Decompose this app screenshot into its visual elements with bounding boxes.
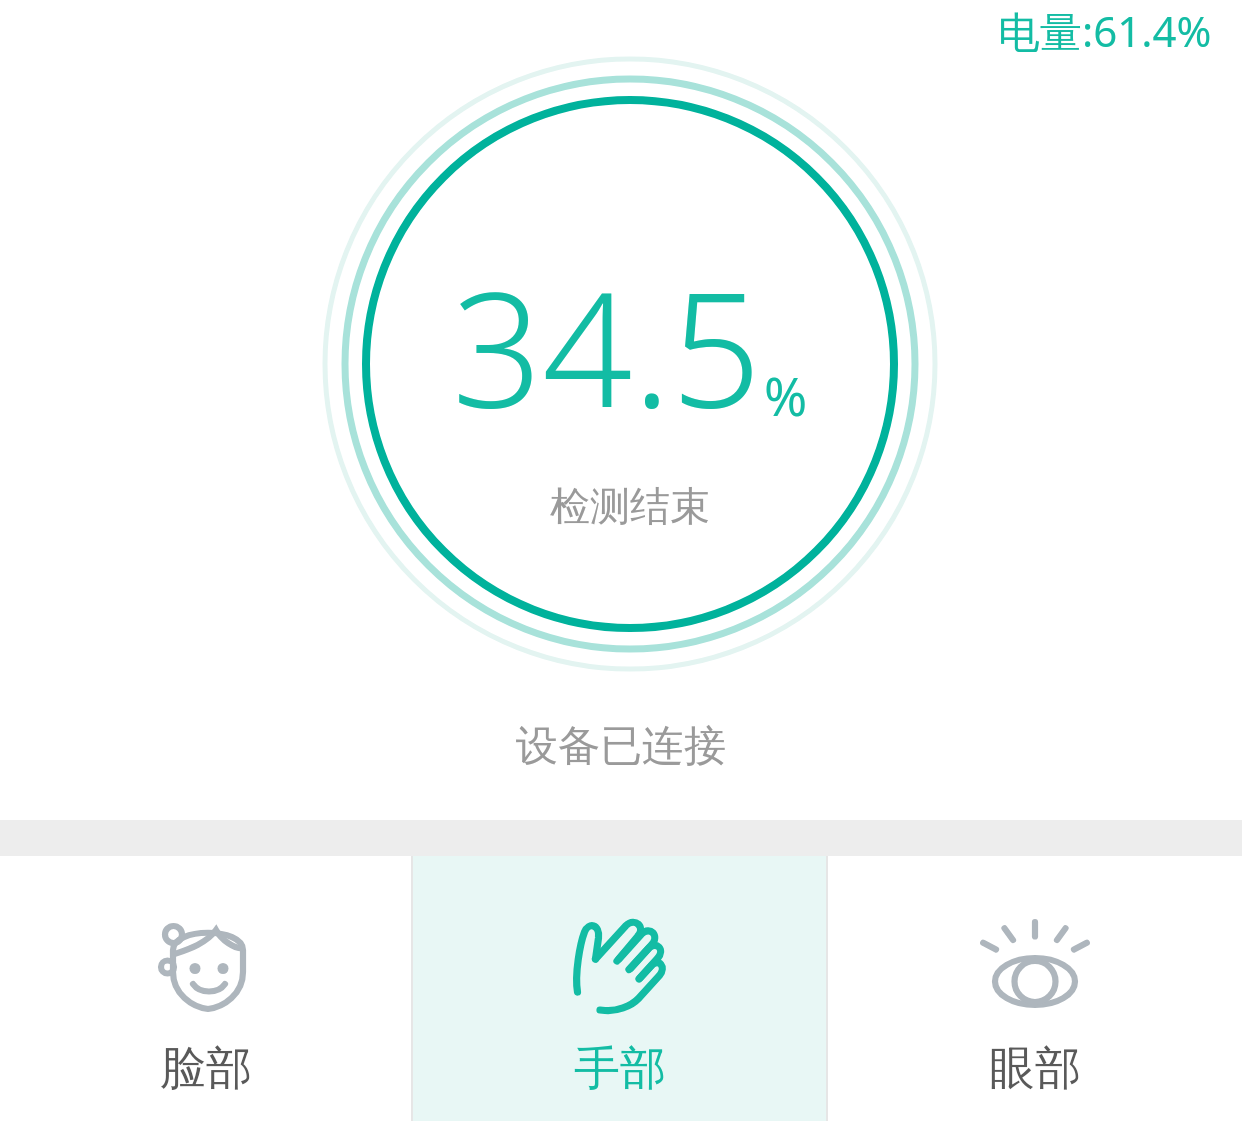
button[interactable]: Eye [828,856,1242,1121]
staticText: 设备已连接 [0,720,1242,773]
other: Eye [985,914,1085,1014]
other: Hand [570,914,670,1014]
staticText: 脸部 [160,1040,252,1098]
staticText: % [764,360,808,431]
staticText: 手部 [574,1040,666,1098]
button[interactable]: Hand [413,856,826,1121]
other: Face [156,914,256,1014]
staticText: 检测结束 [550,481,710,531]
button[interactable]: Face [0,856,411,1121]
staticText: 电量:61.4% [998,2,1212,59]
staticText: 34.5 [452,238,762,453]
staticText: 眼部 [989,1040,1081,1098]
